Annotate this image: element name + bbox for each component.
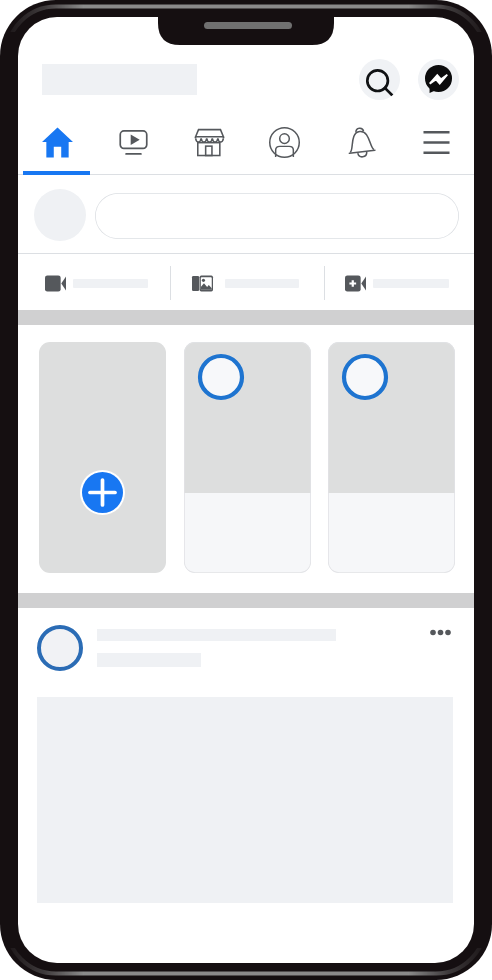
button[interactable]: Notifications bbox=[328, 113, 394, 171]
button[interactable]: Photo bbox=[184, 264, 307, 302]
button[interactable]: Menu bbox=[403, 113, 469, 171]
button[interactable]: Live video bbox=[37, 264, 156, 302]
button[interactable]: Story bbox=[328, 342, 455, 573]
button[interactable]: Profile bbox=[251, 113, 317, 171]
button[interactable]: Your profile bbox=[34, 189, 86, 241]
button[interactable]: Author profile bbox=[37, 625, 83, 671]
button[interactable]: Search bbox=[359, 59, 400, 100]
button[interactable]: Story bbox=[184, 342, 311, 573]
button[interactable]: More options bbox=[421, 613, 459, 651]
button[interactable]: Room bbox=[337, 264, 457, 302]
button[interactable]: Marketplace bbox=[176, 113, 242, 171]
button[interactable]: What's on your mind? bbox=[95, 193, 459, 239]
button[interactable]: Messenger bbox=[418, 59, 459, 100]
button[interactable]: Create story bbox=[39, 342, 166, 573]
button[interactable]: Watch bbox=[100, 113, 166, 171]
button[interactable]: Home bbox=[24, 113, 90, 171]
